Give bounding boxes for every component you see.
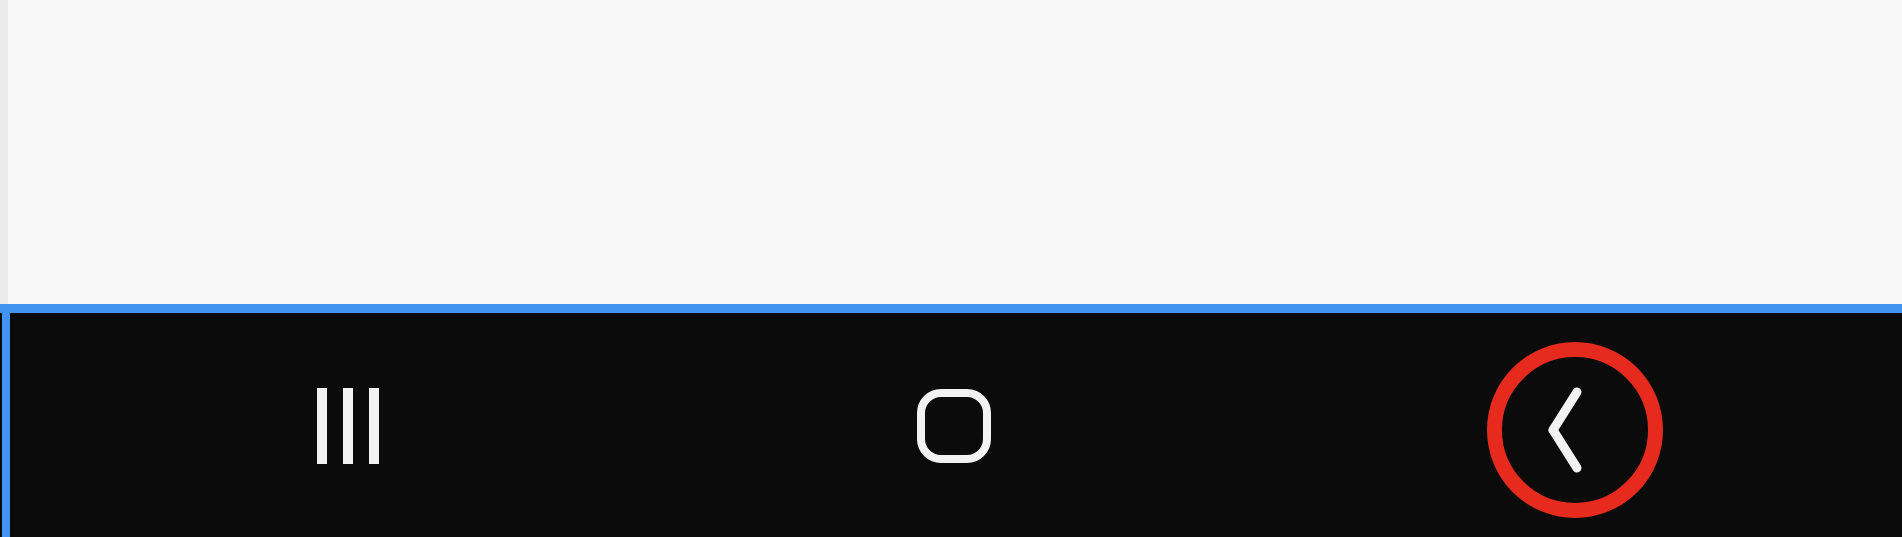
button[interactable]: Recent apps	[258, 348, 438, 503]
button[interactable]: Back	[1485, 340, 1665, 520]
button[interactable]: Home	[864, 348, 1044, 503]
